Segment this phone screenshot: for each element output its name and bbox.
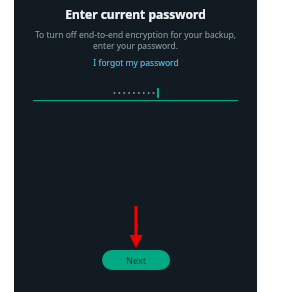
button[interactable]: I forgot my password [87, 56, 185, 70]
staticText: I forgot my password [93, 57, 179, 69]
staticText: Next [126, 254, 147, 266]
staticText: Enter current password [65, 6, 206, 22]
button[interactable]: Password field [33, 88, 238, 101]
staticText: To turn off end-to-end encryption for yo… [26, 29, 245, 51]
button[interactable]: Next [102, 250, 170, 270]
